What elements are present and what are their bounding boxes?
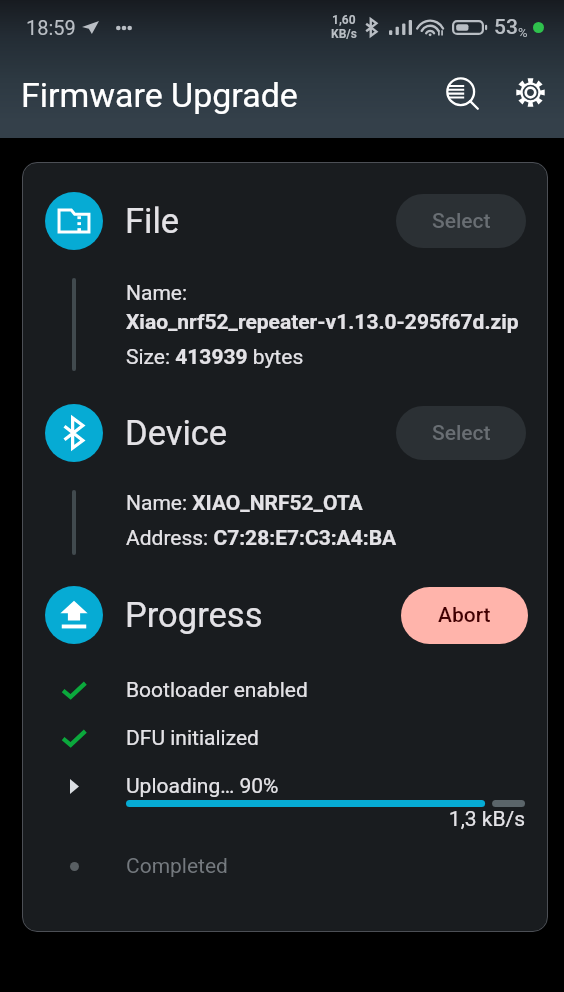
staticText: Abort — [438, 603, 491, 628]
staticText: 53 — [494, 15, 518, 40]
staticText: Bootloader enabled — [126, 678, 308, 703]
staticText: Name: — [126, 281, 188, 306]
button[interactable]: File — [45, 192, 103, 250]
button[interactable]: Search log — [440, 71, 488, 119]
staticText: Xiao_nrf52_repeater-v1.13.0-295f67d.zip — [126, 310, 519, 335]
staticText: KB/s — [331, 27, 357, 41]
button[interactable]: Device — [45, 404, 103, 462]
staticText: Progress — [125, 595, 263, 635]
button[interactable]: Progress — [45, 586, 103, 644]
button[interactable]: Settings — [506, 68, 554, 116]
staticText: Firmware Upgrade — [21, 75, 298, 115]
staticText: 18:59 — [26, 16, 76, 39]
staticText: Completed — [126, 854, 228, 879]
staticText: Size: 413939 bytes — [126, 345, 304, 370]
staticText: Address: C7:28:E7:C3:A4:BA — [126, 526, 397, 551]
staticText: Device — [125, 413, 228, 453]
staticText: DFU initialized — [126, 726, 259, 751]
staticText: Name: XIAO_NRF52_OTA — [126, 491, 363, 516]
staticText: Select — [432, 421, 491, 446]
button[interactable]: Select — [396, 194, 526, 248]
staticText: % — [518, 25, 528, 40]
staticText: 1,60 — [332, 13, 356, 27]
staticText: File — [125, 201, 180, 241]
staticText: Select — [432, 209, 491, 234]
button[interactable]: Abort — [401, 587, 528, 644]
staticText: 1,3 kB/s — [126, 807, 525, 832]
staticText: Uploading… 90% — [126, 774, 279, 799]
button[interactable]: Select — [396, 406, 526, 460]
